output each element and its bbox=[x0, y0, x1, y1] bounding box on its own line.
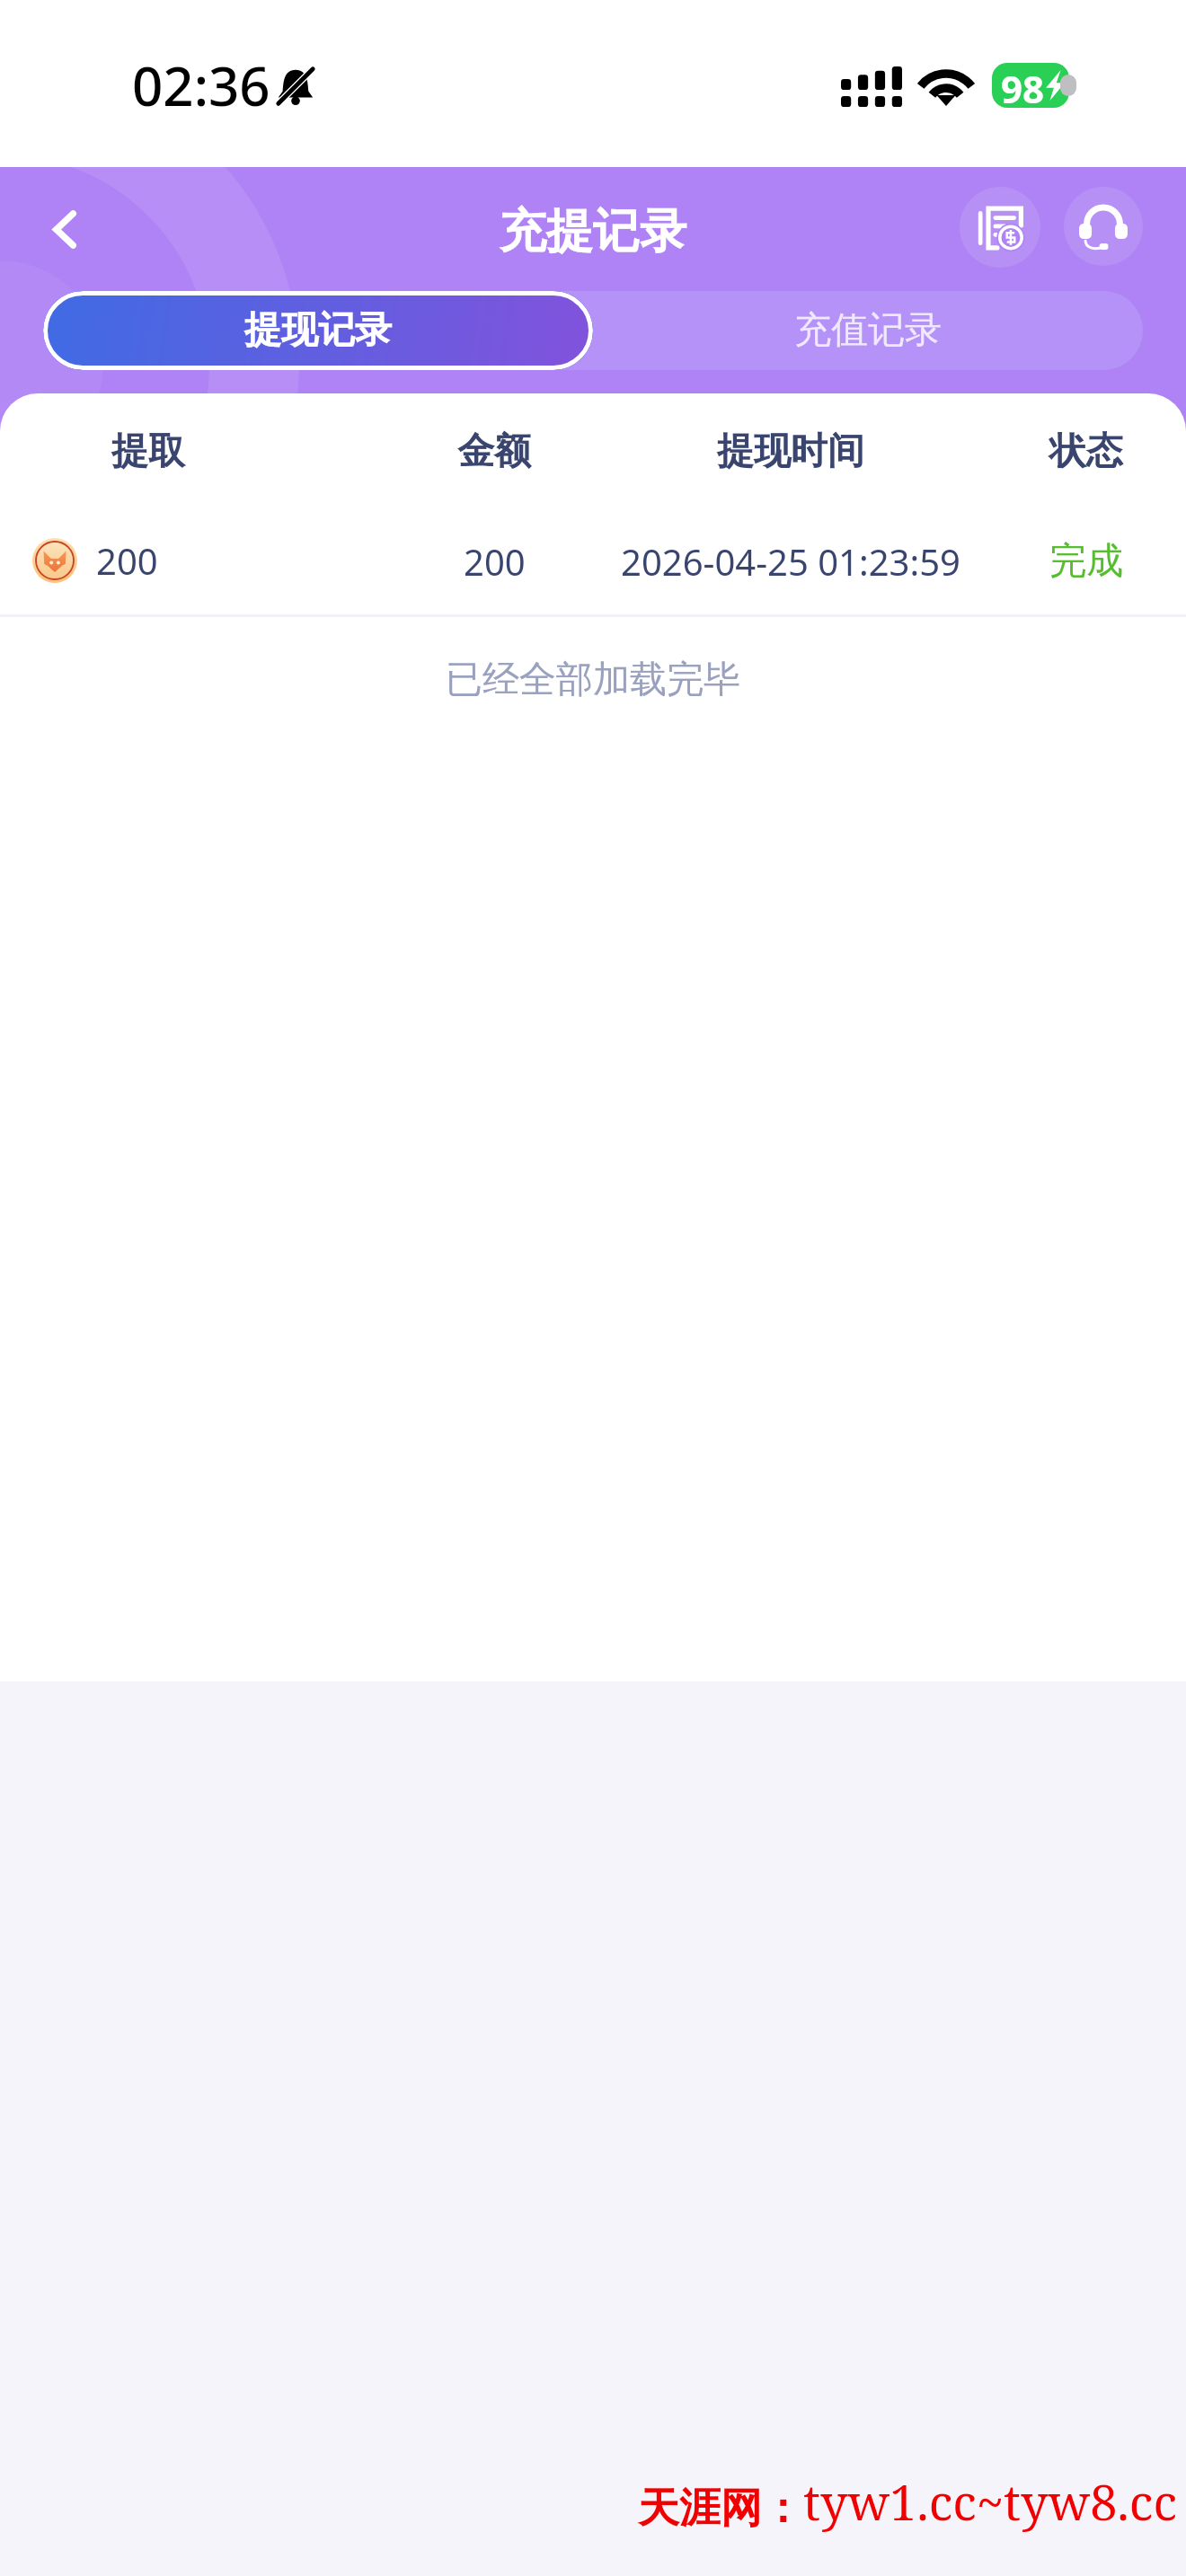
staticText: 充提记录 bbox=[500, 202, 686, 261]
staticText: 2026-04-25 01:23:59 bbox=[621, 537, 960, 586]
staticText: 充值记录 bbox=[794, 307, 942, 354]
staticText: 200 bbox=[464, 537, 526, 586]
staticText: 状态 bbox=[1049, 428, 1123, 475]
staticText: 提现记录 bbox=[244, 307, 392, 354]
staticText: 天涯网： bbox=[638, 2483, 803, 2535]
staticText: 02:36 bbox=[132, 49, 270, 122]
staticText: 98 bbox=[1001, 63, 1045, 108]
button[interactable]: Bill record bbox=[960, 187, 1040, 268]
button[interactable]: Back bbox=[22, 186, 108, 272]
staticText: 已经全部加载完毕 bbox=[446, 657, 740, 703]
button[interactable]: 200 bbox=[0, 503, 1186, 617]
button[interactable]: Customer service bbox=[1064, 187, 1143, 266]
button[interactable]: 充值记录 bbox=[593, 291, 1143, 370]
staticText: 金额 bbox=[457, 428, 531, 475]
button[interactable]: 提现记录 bbox=[43, 291, 593, 370]
staticText: 完成 bbox=[1049, 538, 1123, 585]
staticText: 提现时间 bbox=[717, 428, 864, 475]
staticText: tyw1.cc~tyw8.cc bbox=[803, 2468, 1177, 2535]
staticText: 提取 bbox=[111, 428, 185, 475]
staticText: 200 bbox=[96, 536, 158, 585]
